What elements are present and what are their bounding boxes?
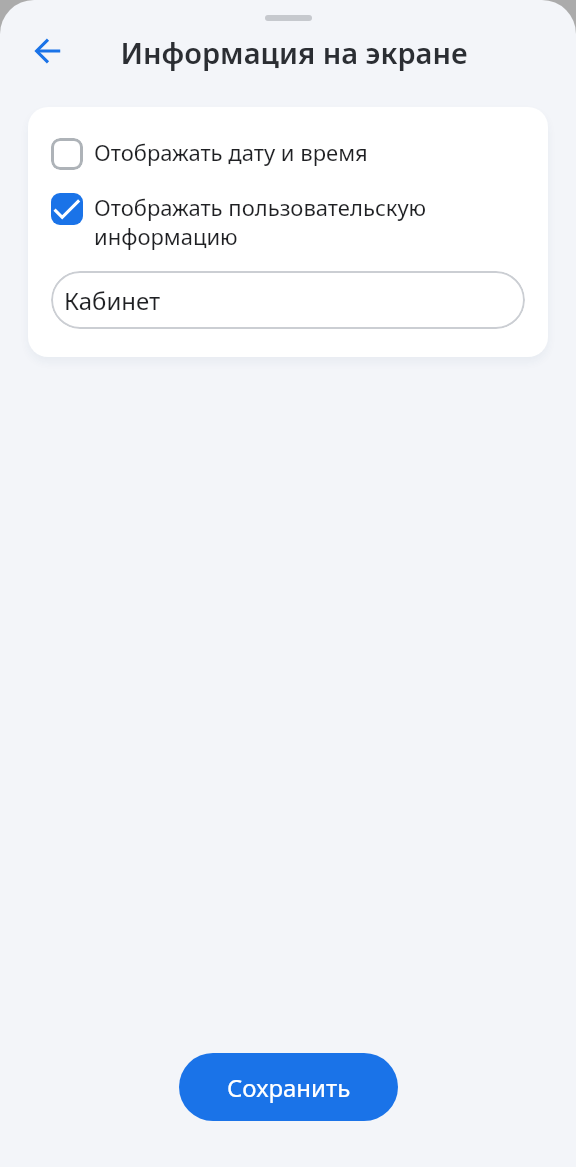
- staticText: Информация на экране: [6, 33, 576, 72]
- staticText: Отображать дату и время: [94, 137, 368, 167]
- button[interactable]: Кабинет: [51, 271, 525, 329]
- staticText: Кабинет: [64, 284, 161, 317]
- staticText: Сохранить: [227, 1071, 351, 1104]
- button[interactable]: Сохранить: [179, 1053, 398, 1121]
- button[interactable]: Отображать дату и время: [51, 138, 525, 170]
- staticText: Отображать пользовательскую информацию: [94, 192, 525, 251]
- button[interactable]: Отображать пользовательскую информацию: [51, 193, 525, 252]
- button[interactable]: Назад: [25, 28, 70, 73]
